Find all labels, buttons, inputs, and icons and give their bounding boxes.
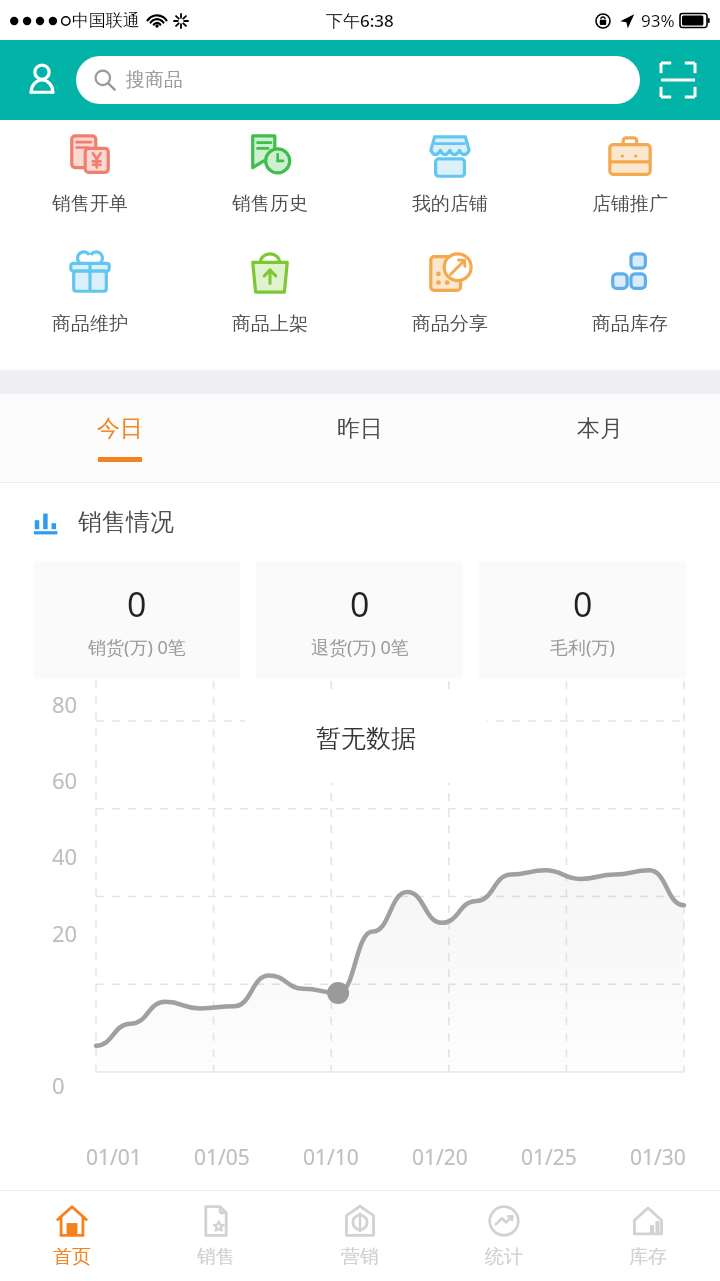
button[interactable]: Scan xyxy=(650,52,706,108)
staticText: 销售 xyxy=(197,1245,235,1269)
staticText: 0 xyxy=(127,581,147,627)
staticText: 毛利(万) xyxy=(550,635,615,660)
staticText: 搜商品 xyxy=(126,68,183,92)
button[interactable]: 我的店铺 xyxy=(360,120,540,222)
staticText: 退货(万) 0笔 xyxy=(311,635,409,660)
staticText: 销货(万) 0笔 xyxy=(88,635,186,660)
staticText: 01/30 xyxy=(630,1143,686,1172)
staticText: 01/05 xyxy=(194,1143,250,1172)
staticText: 本月 xyxy=(577,414,623,443)
staticText: 统计 xyxy=(485,1245,523,1269)
staticText: 暂无数据 xyxy=(316,723,416,754)
button[interactable]: Profile xyxy=(14,52,70,108)
staticText: 93% xyxy=(641,9,675,32)
staticText: 销售开单 xyxy=(52,192,128,216)
staticText: 01/10 xyxy=(303,1143,359,1172)
button[interactable]: 0 xyxy=(256,561,463,679)
button[interactable]: 店铺推广 xyxy=(540,120,720,222)
button[interactable]: 商品分享 xyxy=(360,222,540,350)
button[interactable]: 统计 xyxy=(432,1191,576,1281)
button[interactable]: 库存 xyxy=(576,1191,720,1281)
staticText: 20 xyxy=(52,918,78,948)
button[interactable]: 营销 xyxy=(288,1191,432,1281)
button[interactable]: 首页 xyxy=(0,1191,144,1281)
button[interactable]: 0 xyxy=(34,561,240,679)
button[interactable]: 搜商品 xyxy=(76,56,640,104)
staticText: 40 xyxy=(52,841,78,871)
staticText: 店铺推广 xyxy=(592,192,668,216)
staticText: 01/20 xyxy=(412,1143,468,1172)
staticText: 01/01 xyxy=(86,1143,142,1172)
staticText: 营销 xyxy=(341,1245,379,1269)
staticText: 昨日 xyxy=(337,414,383,443)
staticText: 商品分享 xyxy=(412,312,488,336)
staticText: 今日 xyxy=(97,414,143,443)
staticText: 0 xyxy=(52,1070,65,1100)
staticText: 0 xyxy=(573,581,593,627)
button[interactable]: 销售开单 xyxy=(0,120,180,222)
staticText: 库存 xyxy=(629,1245,667,1269)
staticText: 01/25 xyxy=(521,1143,577,1172)
button[interactable]: 商品库存 xyxy=(540,222,720,350)
button[interactable]: 销售历史 xyxy=(180,120,360,222)
button[interactable]: 销售 xyxy=(144,1191,288,1281)
staticText: 销售历史 xyxy=(232,192,308,216)
staticText: 我的店铺 xyxy=(412,192,488,216)
button[interactable]: 暂无数据 xyxy=(245,693,487,783)
button[interactable]: 本月 xyxy=(480,394,720,482)
staticText: 0 xyxy=(350,581,370,627)
button[interactable]: 昨日 xyxy=(240,394,480,482)
staticText: 中国联通 xyxy=(72,10,140,31)
staticText: 销售情况 xyxy=(78,507,174,537)
button[interactable]: 商品上架 xyxy=(180,222,360,350)
staticText: 商品库存 xyxy=(592,312,668,336)
staticText: 80 xyxy=(52,689,78,719)
staticText: 下午6:38 xyxy=(326,9,394,32)
button[interactable]: 0 xyxy=(479,561,686,679)
staticText: 商品上架 xyxy=(232,312,308,336)
button[interactable]: 今日 xyxy=(0,394,240,482)
staticText: 商品维护 xyxy=(52,312,128,336)
staticText: 60 xyxy=(52,765,78,795)
button[interactable]: 商品维护 xyxy=(0,222,180,350)
staticText: 首页 xyxy=(53,1245,91,1269)
